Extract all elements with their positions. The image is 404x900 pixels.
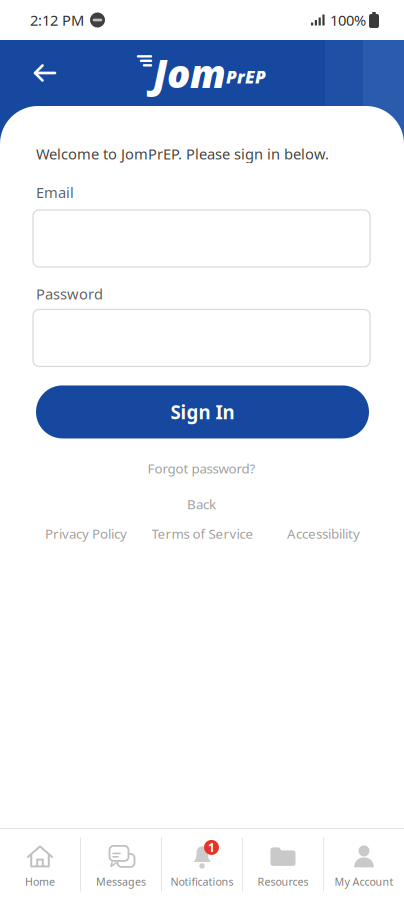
button[interactable]: Sign In bbox=[33, 385, 370, 438]
staticText: Privacy Policy bbox=[45, 525, 127, 542]
staticText: Home bbox=[25, 874, 55, 889]
button[interactable]: Forgot password? bbox=[147, 459, 255, 477]
button[interactable]: My Account bbox=[324, 829, 404, 900]
button[interactable]: Terms of Service bbox=[144, 525, 260, 542]
staticText: Resources bbox=[257, 874, 308, 889]
staticText: 1 bbox=[208, 839, 215, 855]
button[interactable] bbox=[33, 309, 370, 366]
staticText: Terms of Service bbox=[151, 525, 253, 542]
staticText: PrEP bbox=[226, 65, 266, 88]
staticText: Welcome to JomPrEP. Please sign in below… bbox=[36, 144, 329, 163]
button[interactable]: Resources bbox=[243, 829, 323, 900]
staticText: Jom bbox=[153, 47, 226, 99]
button[interactable]: 1 bbox=[162, 829, 242, 900]
staticText: My Account bbox=[334, 874, 393, 889]
staticText: 2:12 PM bbox=[30, 10, 84, 30]
staticText: Accessibility bbox=[287, 525, 360, 542]
button[interactable]: Accessibility bbox=[260, 525, 360, 542]
button[interactable] bbox=[0, 64, 57, 82]
staticText: Password bbox=[36, 284, 103, 303]
button[interactable]: Messages bbox=[81, 829, 161, 900]
button[interactable]: Back bbox=[187, 495, 216, 513]
staticText: Email bbox=[36, 182, 74, 202]
button[interactable]: Privacy Policy bbox=[45, 525, 144, 542]
button[interactable] bbox=[33, 210, 370, 267]
staticText: Forgot password? bbox=[147, 459, 255, 477]
staticText: Back bbox=[187, 495, 216, 513]
staticText: Messages bbox=[96, 874, 146, 889]
staticText: Notifications bbox=[170, 874, 233, 889]
button[interactable]: Home bbox=[0, 829, 80, 900]
staticText: 100% bbox=[330, 10, 366, 30]
staticText: Sign In bbox=[170, 399, 234, 424]
